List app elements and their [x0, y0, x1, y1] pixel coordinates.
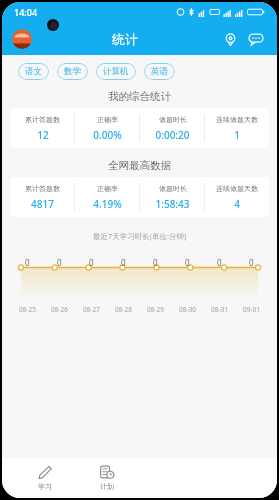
staticText: 09-01 — [243, 305, 260, 314]
button[interactable]: 英语 — [144, 63, 175, 80]
staticText: 08-30 — [179, 305, 196, 314]
staticText: 正确率 — [97, 184, 118, 193]
button[interactable]: 计划 — [76, 458, 138, 498]
staticText: 英语 — [151, 66, 168, 77]
staticText: 08-31 — [211, 305, 228, 314]
staticText: 最近7天学习时长(单位:分钟) — [2, 231, 277, 241]
staticText: 0 — [25, 257, 30, 268]
staticText: 14:04 — [14, 6, 38, 18]
staticText: 08-25 — [19, 305, 36, 314]
staticText: 4 — [234, 197, 240, 211]
staticText: 4.19% — [93, 197, 122, 211]
button[interactable]: 计算机 — [96, 63, 136, 80]
staticText: 08-29 — [147, 305, 164, 314]
staticText: 计划 — [100, 482, 114, 491]
button[interactable]: 学习 — [14, 458, 76, 498]
staticText: 1:58:43 — [155, 197, 190, 211]
staticText: 正确率 — [97, 115, 118, 124]
staticText: 0 — [89, 257, 94, 268]
staticText: 连续做题天数 — [216, 184, 258, 193]
staticText: 0.00% — [93, 128, 122, 142]
staticText: 学习 — [38, 482, 52, 491]
staticText: 累计答题数 — [25, 184, 60, 193]
staticText: 08-27 — [83, 305, 100, 314]
staticText: 我的综合统计 — [2, 90, 277, 103]
staticText: 0 — [217, 257, 222, 268]
staticText: 4817 — [31, 197, 54, 211]
staticText: 计算机 — [103, 66, 129, 77]
staticText: 数学 — [64, 66, 81, 77]
staticText: 0 — [121, 257, 126, 268]
staticText: 0 — [185, 257, 190, 268]
staticText: 累计答题数 — [25, 115, 60, 124]
staticText: 统计 — [112, 31, 138, 47]
staticText: 语文 — [25, 66, 42, 77]
button[interactable]: Profile — [12, 29, 32, 49]
staticText: 做题时长 — [159, 115, 187, 124]
staticText: 0:00:20 — [155, 128, 190, 142]
button[interactable]: Messages — [245, 28, 267, 50]
staticText: 连续做题天数 — [216, 115, 258, 124]
staticText: 08-28 — [115, 305, 132, 314]
staticText: 1 — [234, 128, 240, 142]
staticText: 全网最高数据 — [2, 159, 277, 172]
staticText: 0 — [249, 257, 254, 268]
staticText: 0 — [57, 257, 62, 268]
staticText: 0 — [153, 257, 158, 268]
staticText: 12 — [37, 128, 49, 142]
button[interactable]: 数学 — [57, 63, 88, 80]
staticText: 08-26 — [51, 305, 68, 314]
staticText: 做题时长 — [159, 184, 187, 193]
button[interactable]: 语文 — [18, 63, 49, 80]
button[interactable]: Location — [219, 28, 241, 50]
